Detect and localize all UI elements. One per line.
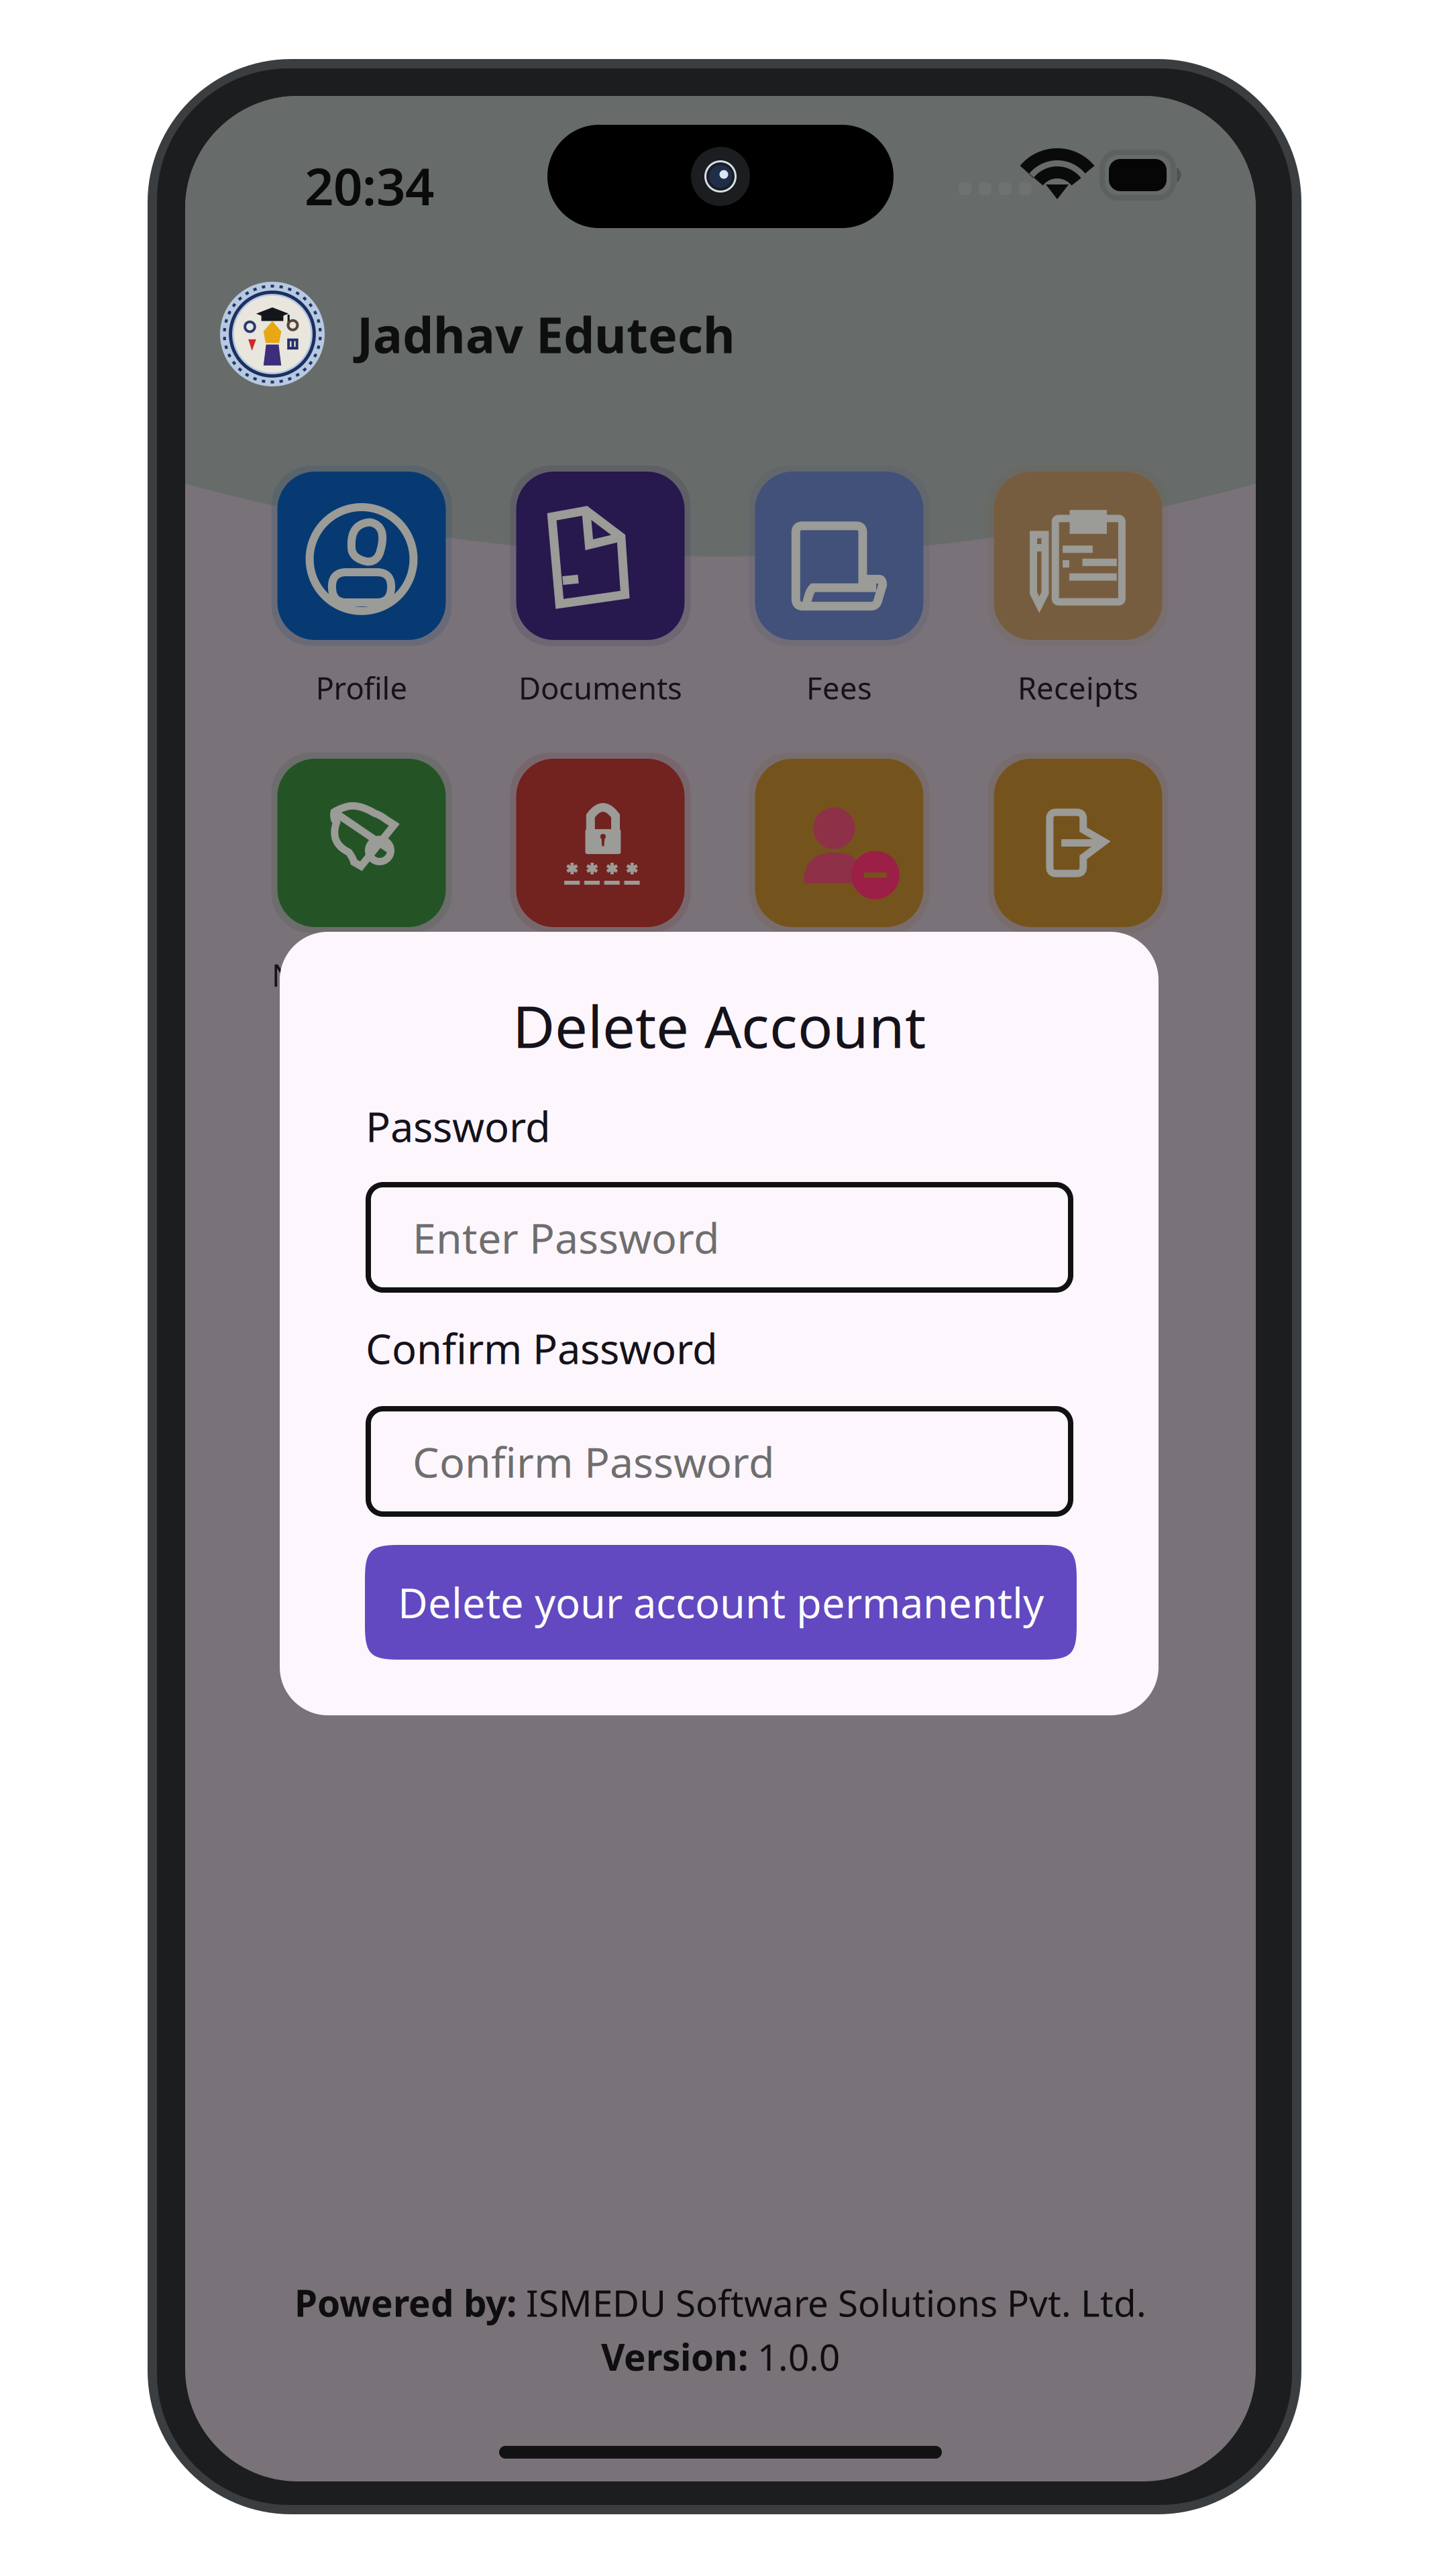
staticText: Powered by: — [294, 2278, 526, 2327]
button[interactable]: Delete Acc — [720, 759, 959, 1014]
staticText: Enter Password — [413, 1209, 720, 1265]
staticText: Confirm Password — [413, 1434, 775, 1489]
button[interactable]: Documents — [481, 472, 720, 727]
staticText: Password — [366, 1099, 551, 1153]
button[interactable]: Delete your account permanently — [365, 1545, 1077, 1660]
button[interactable]: Change Pass — [481, 759, 720, 1014]
staticText: Jadhav Edutech — [357, 301, 735, 367]
staticText: Notifications — [272, 955, 451, 995]
staticText: Delete your account permanently — [398, 1575, 1044, 1630]
staticText: 20:34 — [305, 152, 434, 219]
staticText: Receipts — [1018, 667, 1138, 708]
staticText: 1.0.0 — [757, 2332, 840, 2381]
staticText: ISMEDU Software Solutions Pvt. Ltd. — [526, 2278, 1146, 2327]
button[interactable]: Profile — [242, 472, 481, 727]
button[interactable]: Logout — [959, 759, 1197, 1014]
button[interactable]: Notifications — [242, 759, 481, 1014]
staticText: Delete Account — [513, 987, 926, 1064]
button[interactable]: Receipts — [959, 472, 1197, 727]
staticText: Version: — [601, 2332, 757, 2381]
staticText: Documents — [519, 667, 682, 708]
staticText: Profile — [316, 667, 408, 708]
staticText: Confirm Password — [366, 1321, 718, 1375]
staticText: Fees — [806, 667, 872, 708]
button[interactable]: Fees — [720, 472, 959, 727]
